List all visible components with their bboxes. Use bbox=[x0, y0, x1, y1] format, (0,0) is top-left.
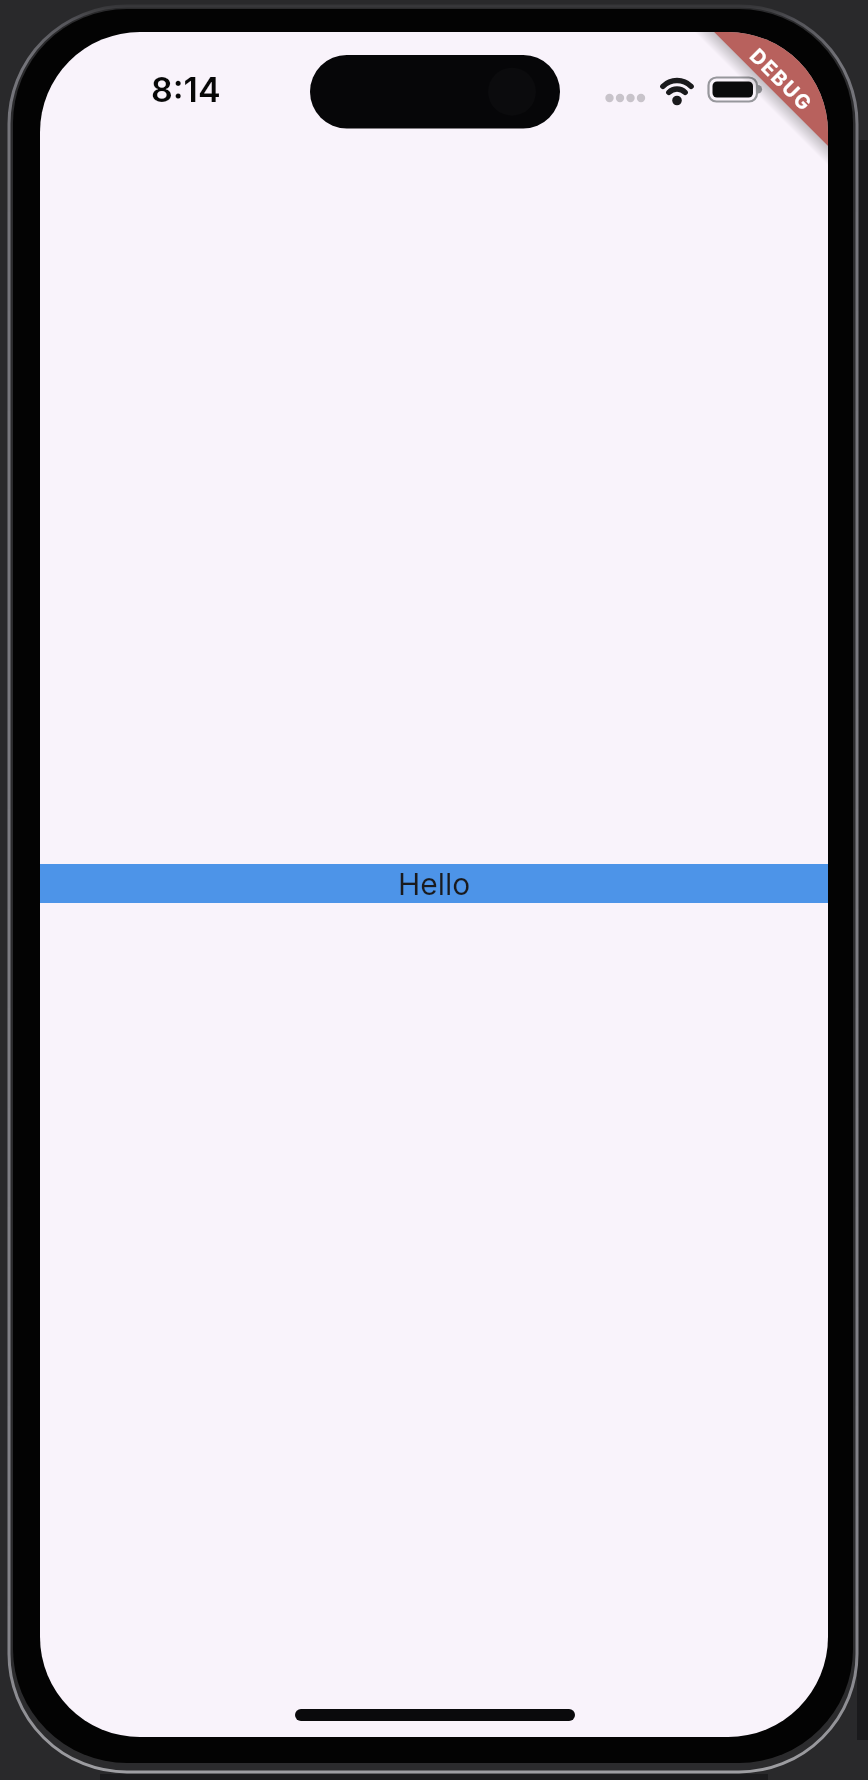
staticText: DEBUG bbox=[745, 44, 818, 117]
staticText: 8:14 bbox=[151, 69, 221, 110]
staticText: Hello bbox=[398, 866, 471, 902]
button[interactable]: Hello bbox=[40, 864, 828, 903]
